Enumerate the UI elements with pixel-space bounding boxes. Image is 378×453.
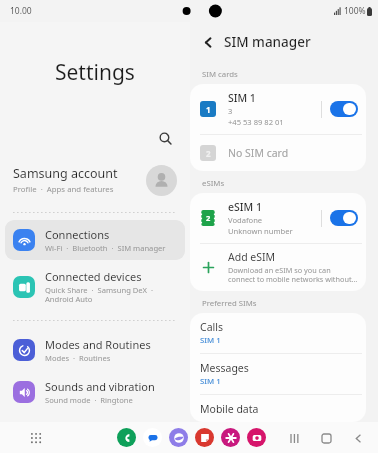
button[interactable]: Back [348,428,368,448]
button[interactable]: Toggle SIM [330,210,358,226]
staticText: eSIMs [202,178,225,189]
button[interactable]: App [195,428,214,447]
staticText: 10.00 [10,5,32,17]
button[interactable]: Toggle SIM [330,101,358,117]
staticText: Unknown number [228,226,293,236]
button[interactable]: Back [196,30,220,54]
staticText: Connections [45,227,110,242]
button[interactable]: App [117,428,136,447]
button[interactable]: Recents [284,428,304,448]
staticText: Download an eSIM so you can connect to m… [228,265,358,284]
staticText: 2 [206,213,211,223]
staticText: Samsung account [13,165,118,182]
staticText: Preferred SIMs [202,298,257,309]
staticText: SIM 1 [200,335,221,346]
staticText: +45 53 89 82 01 [228,117,284,127]
staticText: SIM 1 [228,91,256,105]
staticText: Messages [200,361,249,375]
staticText: Add eSIM [228,250,276,264]
button[interactable]: 1 [190,84,366,134]
button[interactable]: Samsung account [0,154,190,206]
button[interactable]: App [247,428,266,447]
staticText: 100% [344,5,366,17]
staticText: Sounds and vibration [45,379,155,394]
staticText: Modes and Routines [45,337,151,352]
button[interactable]: Search [152,125,178,151]
button[interactable]: App [143,428,162,447]
button[interactable]: App [221,428,240,447]
staticText: 1 [206,104,211,115]
button[interactable]: Apps [26,428,46,448]
button[interactable]: Add eSIM [190,244,366,291]
button[interactable]: Sounds and vibration [5,372,185,412]
button[interactable]: Calls [190,313,366,353]
staticText: Settings [55,58,135,87]
button[interactable]: Modes and Routines [5,330,185,370]
staticText: Quick Share · Samsung DeX · Android Auto [45,285,177,304]
staticText: Connected devices [45,269,142,284]
staticText: Wi-Fi · Bluetooth · SIM manager [45,243,166,253]
button[interactable]: Connections [5,220,185,260]
staticText: Calls [200,320,223,334]
staticText: Vodafone [228,215,263,225]
button[interactable]: Mobile data [190,395,366,422]
staticText: SIM 1 [200,376,221,387]
button[interactable]: 2 [190,135,366,171]
staticText: SIM cards [202,69,238,80]
staticText: 3 [228,106,233,116]
staticText: eSIM 1 [228,200,262,214]
staticText: Modes · Routines [45,353,111,363]
staticText: Mobile data [200,402,259,415]
button[interactable]: Messages [190,354,366,394]
staticText: Profile · Apps and features [13,184,114,195]
button[interactable]: Home [316,428,336,448]
button[interactable]: 2 [190,193,366,243]
button[interactable]: App [169,428,188,447]
staticText: No SIM card [228,146,289,160]
button[interactable]: Connected devices [5,262,185,311]
staticText: 2 [206,148,211,159]
staticText: SIM manager [224,33,311,51]
staticText: Sound mode · Ringtone [45,395,133,405]
